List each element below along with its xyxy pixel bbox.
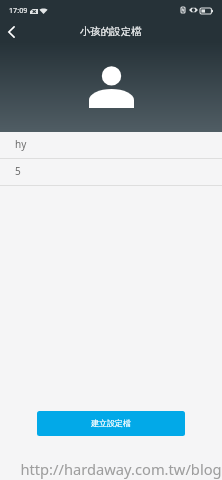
button[interactable]: Back <box>0 18 22 48</box>
staticText: 小孩的設定檔 <box>80 25 142 38</box>
button[interactable]: 建立設定檔 <box>37 411 185 436</box>
staticText: 17:09 <box>9 5 28 15</box>
staticText: hy <box>15 137 27 151</box>
staticText: 建立設定檔 <box>91 418 131 428</box>
staticText: http://hardaway.com.tw/blog <box>10 459 222 479</box>
button[interactable]: 5 <box>0 159 222 185</box>
staticText: 5 <box>15 164 21 178</box>
button[interactable]: hy <box>0 132 222 158</box>
